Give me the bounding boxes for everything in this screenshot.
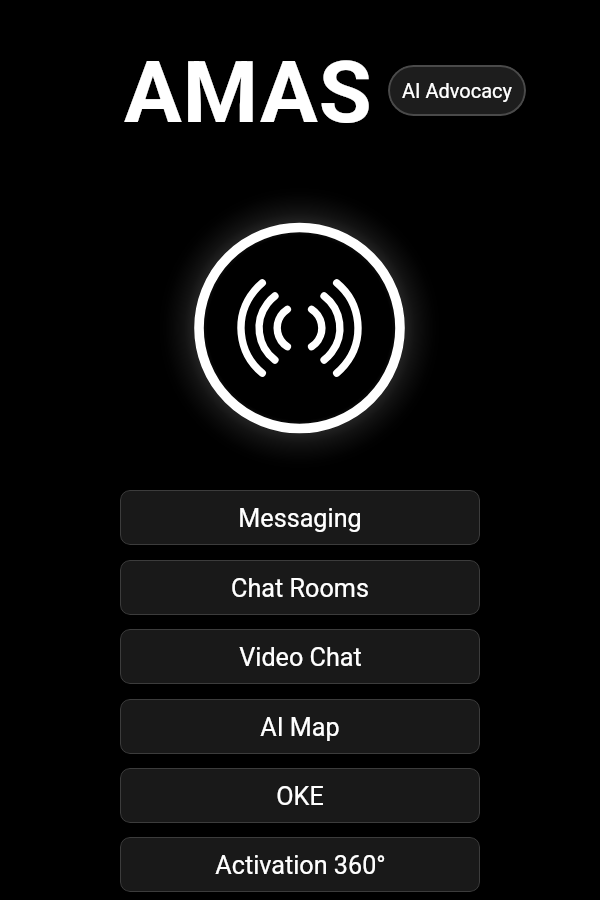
staticText: Messaging xyxy=(238,504,362,534)
staticText: AI Advocacy xyxy=(402,79,512,102)
button[interactable]: Activation 360° xyxy=(120,837,480,892)
staticText: OKE xyxy=(276,782,324,812)
button[interactable]: AMAS broadcast logo xyxy=(139,168,459,488)
staticText: Video Chat xyxy=(239,643,362,673)
button[interactable]: AI Map xyxy=(120,699,480,754)
staticText: AMAS xyxy=(124,42,373,143)
staticText: Activation 360° xyxy=(215,851,386,881)
button[interactable]: Chat Rooms xyxy=(120,560,480,615)
button[interactable]: OKE xyxy=(120,768,480,823)
staticText: AI Map xyxy=(260,713,340,743)
button[interactable]: AI Advocacy xyxy=(388,65,526,116)
staticText: Chat Rooms xyxy=(231,574,369,604)
button[interactable]: Video Chat xyxy=(120,629,480,684)
button[interactable]: Messaging xyxy=(120,490,480,545)
